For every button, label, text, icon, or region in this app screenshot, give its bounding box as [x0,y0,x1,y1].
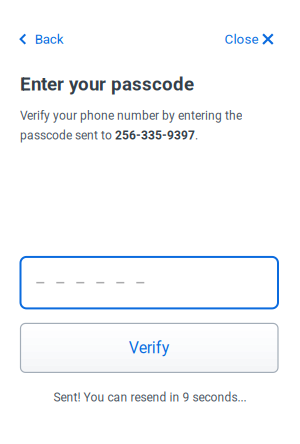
staticText: Enter your passcode [20,73,194,95]
staticText: passcode sent to [20,128,115,142]
button[interactable]: Back [19,32,64,47]
staticText: Back [35,31,64,47]
staticText: Verify [129,338,170,357]
staticText: Close [225,31,259,47]
staticText: Sent! You can resend in 9 seconds... [53,390,246,404]
staticText: Verify your phone number by entering the [20,109,242,123]
staticText: . [195,128,198,142]
button[interactable]: Verify [20,323,278,372]
button[interactable]: Close [225,32,274,47]
staticText: 256-335-9397 [115,128,195,142]
